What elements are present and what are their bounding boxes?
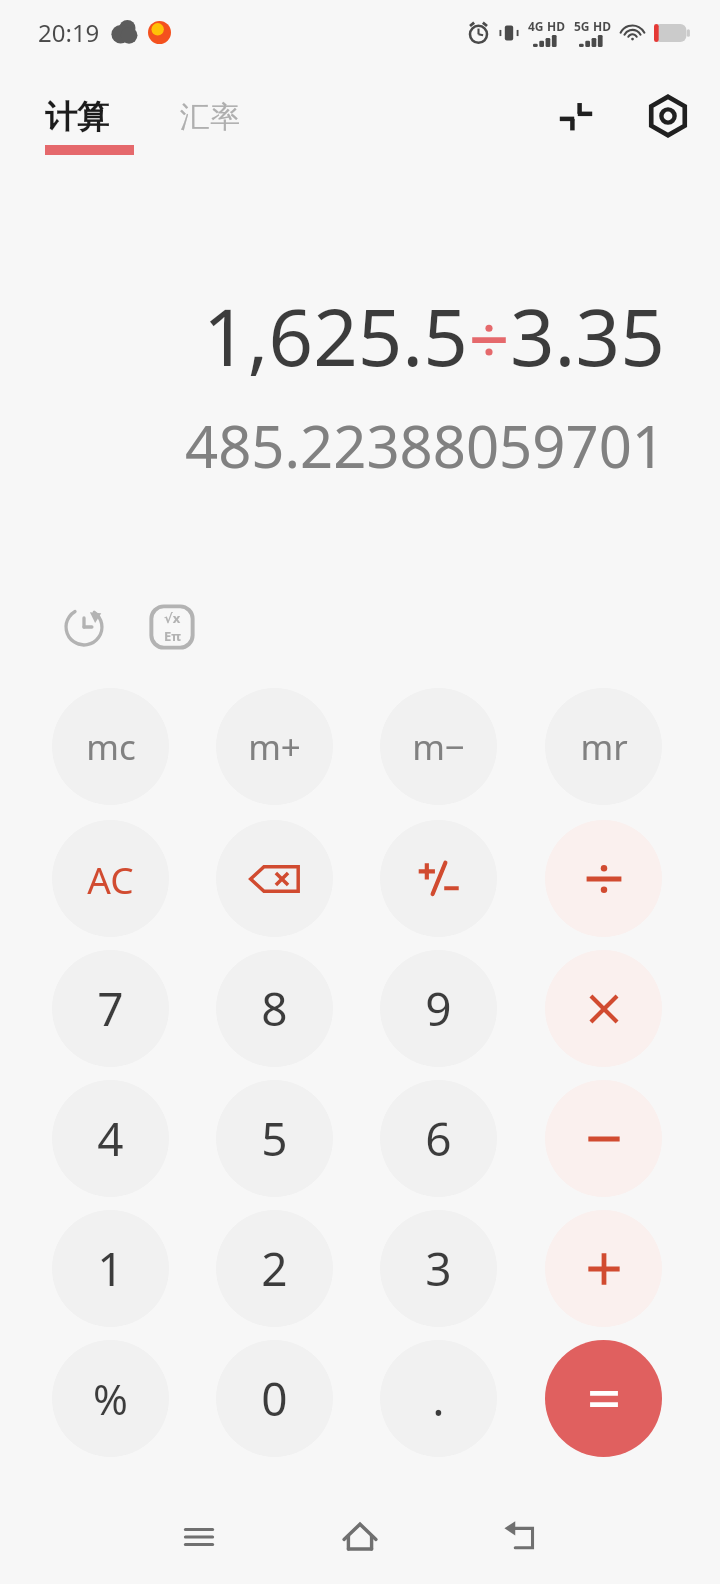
button[interactable]: % bbox=[52, 1340, 169, 1457]
button[interactable]: Toggle sign bbox=[380, 820, 497, 937]
button[interactable]: Backspace bbox=[216, 820, 333, 937]
staticText: m− bbox=[412, 723, 465, 771]
staticText: mc bbox=[86, 723, 136, 771]
button[interactable]: Back bbox=[490, 1506, 552, 1568]
button[interactable]: 6 bbox=[380, 1080, 497, 1197]
staticText: 3 bbox=[425, 1237, 452, 1300]
staticText: 8 bbox=[261, 977, 288, 1040]
button[interactable]: 5 bbox=[216, 1080, 333, 1197]
staticText: 6 bbox=[425, 1107, 452, 1170]
staticText: 9 bbox=[425, 977, 452, 1040]
button[interactable]: Add bbox=[545, 1210, 662, 1327]
staticText: % bbox=[93, 1370, 128, 1427]
button[interactable]: Multiply bbox=[545, 950, 662, 1067]
button[interactable]: 7 bbox=[52, 950, 169, 1067]
staticText: 4G bbox=[528, 18, 544, 34]
button[interactable]: 3 bbox=[380, 1210, 497, 1327]
staticText: Eπ bbox=[164, 627, 181, 645]
button[interactable]: Settings bbox=[638, 86, 698, 146]
staticText: m+ bbox=[248, 723, 301, 771]
button[interactable]: 4 bbox=[52, 1080, 169, 1197]
button[interactable]: Resize bbox=[548, 88, 604, 144]
button[interactable]: History bbox=[56, 599, 112, 655]
button[interactable]: Home bbox=[327, 1504, 393, 1570]
staticText: 计算 bbox=[45, 97, 109, 137]
button[interactable]: 0 bbox=[216, 1340, 333, 1457]
staticText: mr bbox=[580, 723, 628, 771]
staticText: 20:19 bbox=[38, 16, 100, 49]
button[interactable]: m− bbox=[380, 688, 497, 805]
button[interactable]: . bbox=[380, 1340, 497, 1457]
button[interactable]: 2 bbox=[216, 1210, 333, 1327]
staticText: 485.22388059701 bbox=[184, 406, 665, 485]
staticText: 汇率 bbox=[180, 98, 240, 136]
staticText: . bbox=[432, 1367, 445, 1430]
staticText: HD bbox=[547, 18, 565, 34]
staticText: 5G bbox=[574, 18, 590, 34]
staticText: 1 bbox=[97, 1237, 124, 1300]
staticText: AC bbox=[87, 854, 134, 904]
button[interactable]: Scientific mode bbox=[144, 599, 200, 655]
staticText: 5 bbox=[261, 1107, 288, 1170]
staticText: √x bbox=[164, 609, 181, 627]
button[interactable]: 9 bbox=[380, 950, 497, 1067]
staticText: 7 bbox=[97, 977, 124, 1040]
button[interactable]: 汇率 bbox=[180, 98, 240, 136]
button[interactable]: mc bbox=[52, 688, 169, 805]
staticText: 1,625.5 bbox=[203, 283, 468, 389]
button[interactable]: 计算 bbox=[45, 97, 134, 155]
button[interactable]: Recent apps bbox=[168, 1506, 230, 1568]
button[interactable]: m+ bbox=[216, 688, 333, 805]
staticText: HD bbox=[593, 18, 611, 34]
staticText: 0 bbox=[261, 1367, 288, 1430]
button[interactable]: 1 bbox=[52, 1210, 169, 1327]
button[interactable]: mr bbox=[545, 688, 662, 805]
button[interactable]: Divide bbox=[545, 820, 662, 937]
staticText: 4 bbox=[97, 1107, 124, 1170]
staticText: 3.35 bbox=[510, 283, 665, 389]
staticText: 2 bbox=[261, 1237, 288, 1300]
button[interactable]: Subtract bbox=[545, 1080, 662, 1197]
button[interactable]: AC bbox=[52, 820, 169, 937]
button[interactable]: Equals bbox=[545, 1340, 662, 1457]
button[interactable]: 8 bbox=[216, 950, 333, 1067]
